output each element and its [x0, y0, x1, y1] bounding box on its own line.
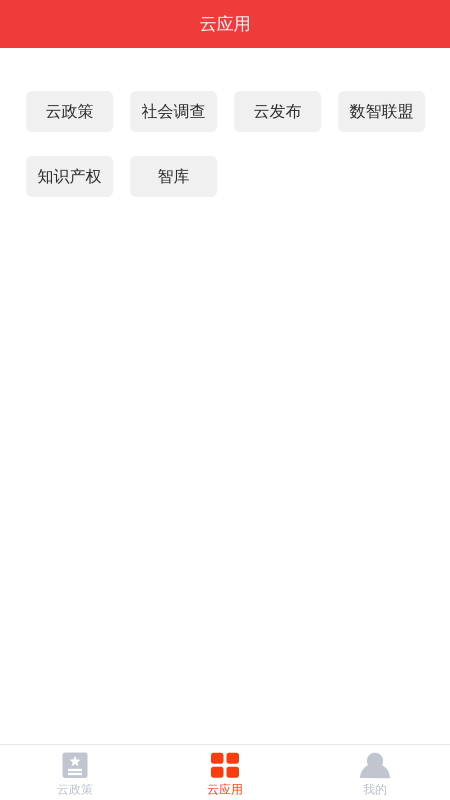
button[interactable]: 知识产权: [26, 156, 113, 197]
button[interactable]: 云政策: [26, 91, 113, 132]
staticText: 数智联盟: [349, 102, 413, 121]
staticText: 云政策: [57, 782, 93, 797]
staticText: 智库: [157, 167, 189, 186]
staticText: 云发布: [253, 102, 301, 121]
staticText: 知识产权: [37, 167, 101, 186]
button[interactable]: 云政策: [0, 745, 150, 800]
button[interactable]: 社会调查: [130, 91, 217, 132]
button[interactable]: 我的: [300, 745, 450, 800]
staticText: 云政策: [45, 102, 93, 121]
button[interactable]: 智库: [130, 156, 217, 197]
staticText: 云应用: [199, 13, 250, 35]
staticText: 社会调查: [141, 102, 205, 121]
button[interactable]: 云应用: [150, 745, 300, 800]
button[interactable]: 云发布: [234, 91, 321, 132]
staticText: 云应用: [207, 782, 243, 797]
button[interactable]: 数智联盟: [338, 91, 425, 132]
staticText: 我的: [363, 782, 387, 797]
